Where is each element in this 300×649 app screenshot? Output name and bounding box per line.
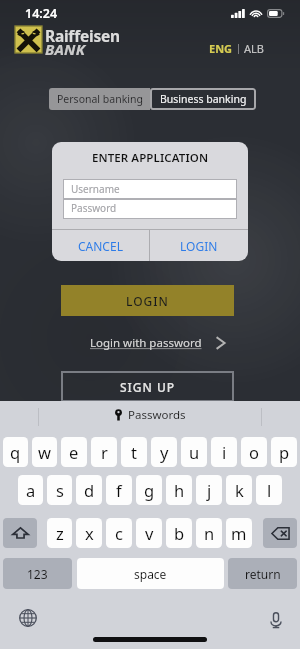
button[interactable]: k [226, 475, 252, 505]
staticText: d [84, 479, 95, 501]
staticText: LOGIN [126, 293, 169, 309]
button[interactable]: f [106, 475, 132, 505]
staticText: q [10, 441, 21, 463]
button[interactable]: Dictation [266, 610, 286, 630]
staticText: LOGIN [180, 238, 218, 254]
button[interactable]: LOGIN [150, 230, 248, 261]
staticText: g [144, 479, 155, 501]
staticText: k [235, 479, 244, 501]
staticText: ALB [244, 41, 264, 56]
button[interactable]: s [47, 475, 72, 505]
button[interactable]: m [226, 518, 252, 548]
staticText: e [69, 441, 79, 463]
staticText: h [174, 479, 185, 501]
button[interactable]: ENG [209, 41, 264, 56]
staticText: u [189, 441, 200, 463]
button[interactable]: Backspace [263, 518, 297, 548]
staticText: ENG [209, 41, 233, 56]
staticText: Passwords [128, 407, 186, 423]
staticText: l [267, 479, 272, 501]
staticText: SIGN UP [120, 379, 176, 395]
button[interactable]: e [61, 437, 87, 467]
button[interactable]: Passwords [114, 407, 186, 423]
button[interactable]: x [76, 518, 102, 548]
button[interactable]: w [32, 437, 57, 467]
staticText: o [249, 441, 259, 463]
staticText: b [174, 522, 185, 544]
button[interactable]: h [166, 475, 192, 505]
button[interactable]: c [106, 518, 132, 548]
button[interactable]: i [211, 437, 237, 467]
staticText: return [245, 566, 281, 582]
button[interactable]: CANCEL [52, 230, 149, 261]
staticText: f [116, 479, 122, 501]
staticText: n [204, 522, 215, 544]
staticText: Personal banking [57, 92, 143, 106]
staticText: r [101, 441, 108, 463]
staticText: t [131, 441, 137, 463]
staticText: y [160, 441, 169, 463]
button[interactable]: SIGN UP [61, 371, 234, 402]
button[interactable]: return [228, 558, 297, 589]
staticText: p [279, 441, 290, 463]
staticText: j [207, 479, 212, 501]
button[interactable]: o [241, 437, 267, 467]
button[interactable]: space [77, 558, 224, 589]
staticText: a [26, 479, 36, 501]
button[interactable]: u [181, 437, 207, 467]
button[interactable]: a [18, 475, 43, 505]
staticText: Password [71, 201, 117, 215]
staticText: w [38, 441, 51, 463]
button[interactable]: Personal banking [49, 88, 150, 110]
button[interactable]: Business banking [150, 88, 256, 110]
staticText: space [134, 566, 167, 582]
staticText: Username [71, 182, 120, 196]
button[interactable]: v [136, 518, 162, 548]
button[interactable]: Shift [3, 518, 37, 548]
staticText: x [85, 522, 94, 544]
staticText: c [115, 522, 123, 544]
staticText: s [56, 479, 64, 501]
staticText: 14:24 [25, 5, 58, 22]
button[interactable]: y [151, 437, 177, 467]
button[interactable]: j [196, 475, 222, 505]
button[interactable]: d [76, 475, 102, 505]
button[interactable]: 123 [3, 558, 72, 589]
staticText: BANK [45, 39, 86, 59]
staticText: Login with password [90, 335, 202, 351]
button[interactable]: b [166, 518, 192, 548]
staticText: i [222, 441, 227, 463]
staticText: CANCEL [78, 238, 123, 254]
button[interactable]: Change keyboard [18, 608, 38, 628]
staticText: v [145, 522, 154, 544]
button[interactable]: Login with password [90, 335, 226, 351]
staticText: 123 [27, 566, 48, 582]
button[interactable]: p [271, 437, 297, 467]
staticText: ENTER APPLICATION [52, 150, 248, 166]
button[interactable]: t [121, 437, 147, 467]
button[interactable]: n [196, 518, 222, 548]
button[interactable]: l [256, 475, 282, 505]
staticText: Raiffeisen [45, 25, 120, 46]
button[interactable]: LOGIN [61, 285, 234, 316]
staticText: m [231, 522, 247, 544]
staticText: Business banking [160, 92, 247, 106]
button[interactable]: g [136, 475, 162, 505]
staticText: z [56, 522, 64, 544]
button[interactable]: q [3, 437, 28, 467]
button[interactable]: r [91, 437, 117, 467]
button[interactable]: z [47, 518, 72, 548]
